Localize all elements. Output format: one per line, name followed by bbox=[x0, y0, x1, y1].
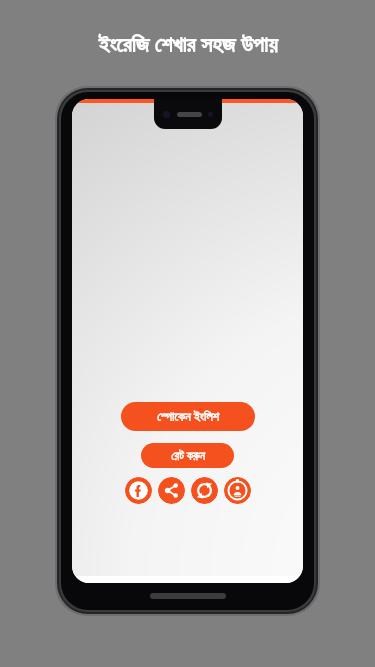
button[interactable]: Privacy policy bbox=[224, 477, 251, 504]
staticText: ইংরেজি শেখার সহজ উপায় bbox=[98, 28, 278, 58]
staticText: স্পোকেন ইংলিশ bbox=[157, 408, 219, 425]
button[interactable]: রেট করুন bbox=[141, 443, 234, 468]
button[interactable]: Facebook bbox=[125, 477, 152, 504]
button[interactable]: স্পোকেন ইংলিশ bbox=[121, 402, 255, 431]
button[interactable]: Share bbox=[158, 477, 185, 504]
button[interactable]: More apps bbox=[191, 477, 218, 504]
staticText: রেট করুন bbox=[171, 448, 205, 464]
